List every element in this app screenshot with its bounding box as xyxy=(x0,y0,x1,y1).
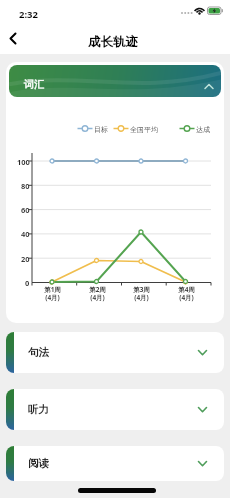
staticText: 0 xyxy=(25,278,30,287)
staticText: 阅读 xyxy=(28,457,49,470)
staticText: 第1周 (4月) xyxy=(44,285,61,302)
staticText: 全国平均 xyxy=(130,125,158,134)
staticText: 20 xyxy=(21,254,30,263)
staticText: 成长轨迹 xyxy=(88,34,138,50)
staticText: 2:32 xyxy=(19,8,38,21)
staticText: 第4周 (4月) xyxy=(178,285,195,302)
staticText: 第2周 (4月) xyxy=(89,285,106,302)
staticText: 80 xyxy=(21,181,30,190)
button[interactable]: 句法 xyxy=(6,332,224,373)
staticText: 听力 xyxy=(28,403,49,416)
button[interactable]: 听力 xyxy=(6,389,224,430)
staticText: 达成 xyxy=(196,125,210,134)
staticText: 40 xyxy=(21,229,30,238)
button[interactable] xyxy=(6,32,24,50)
button[interactable] xyxy=(9,65,221,97)
staticText: 词汇 xyxy=(24,78,44,91)
staticText: 句法 xyxy=(28,346,49,359)
staticText: 100 xyxy=(17,157,30,166)
button[interactable]: 阅读 xyxy=(6,446,224,481)
staticText: 第3周 (4月) xyxy=(133,285,150,302)
staticText: 目标 xyxy=(94,125,108,134)
staticText: 60 xyxy=(21,205,30,214)
